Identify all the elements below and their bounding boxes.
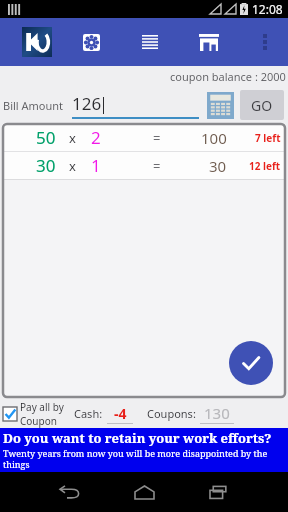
button[interactable]: Settings xyxy=(71,22,111,62)
staticText: x xyxy=(69,157,76,175)
staticText: 12:08 xyxy=(252,1,283,17)
staticText: = xyxy=(153,157,161,175)
staticText: 30 xyxy=(209,156,227,176)
staticText: Coupon xyxy=(20,414,57,428)
button[interactable]: Store xyxy=(189,22,229,62)
staticText: 12 left xyxy=(249,159,281,173)
staticText: 2 xyxy=(91,126,101,149)
button[interactable]: Home xyxy=(126,474,162,510)
staticText: Twenty years from now you will be more d… xyxy=(3,447,288,470)
staticText: Do you want to retain your work efforts? xyxy=(3,429,272,447)
staticText: x xyxy=(69,129,76,147)
button[interactable]: Calculator xyxy=(205,90,235,120)
button[interactable]: GO xyxy=(240,90,284,120)
staticText: 30 xyxy=(36,154,56,177)
button[interactable]: Pay all by xyxy=(3,400,64,428)
button[interactable]: App logo xyxy=(22,27,52,57)
staticText: Cash: xyxy=(74,406,103,421)
staticText: = xyxy=(153,129,161,147)
staticText: Coupons: xyxy=(147,406,196,421)
staticText: 1 xyxy=(91,154,101,177)
staticText: 126 xyxy=(72,92,102,115)
staticText: 130 xyxy=(204,403,230,423)
staticText: 50 xyxy=(36,126,56,149)
button[interactable]: More options xyxy=(248,25,282,59)
staticText: -4 xyxy=(114,404,127,423)
button[interactable]: Back xyxy=(51,474,87,510)
button[interactable]: List xyxy=(130,22,170,62)
staticText: Bill Amount xyxy=(3,98,64,113)
button[interactable]: Recent apps xyxy=(201,474,237,510)
staticText: Pay all by xyxy=(20,400,64,414)
staticText: 7 left xyxy=(255,131,281,145)
staticText: coupon balance : 2000 xyxy=(170,69,286,84)
staticText: GO xyxy=(251,96,273,115)
button[interactable]: Confirm xyxy=(229,341,273,385)
staticText: 100 xyxy=(201,128,227,148)
